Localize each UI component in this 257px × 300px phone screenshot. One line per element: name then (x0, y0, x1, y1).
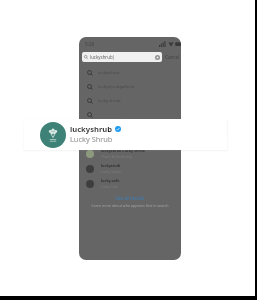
staticText: 5:26 (85, 41, 95, 47)
staticText: luckyshrub| (90, 54, 116, 60)
button[interactable]: See all results (79, 195, 181, 201)
staticText: luckystudi (101, 163, 121, 168)
staticText: luckyshrub (98, 70, 120, 76)
staticText: lucky shrub (98, 98, 121, 104)
button[interactable]: luckyshrub Lucky Shrub (86, 147, 181, 160)
staticText: Plants & Gardening (101, 154, 132, 159)
button[interactable]: luckyshrubgalleria (87, 80, 181, 94)
staticText: Lucky Shrub (70, 134, 113, 144)
button[interactable]: lucky shrub (87, 94, 181, 108)
button[interactable]: Cancel (165, 54, 180, 60)
button[interactable]: lucky.cafe (86, 177, 181, 190)
button[interactable]: luckyshrub (24, 119, 227, 150)
button[interactable]: luckyshrub (87, 66, 181, 80)
staticText: Learn more about who appears first in se… (83, 203, 177, 208)
button[interactable]: luckystudi (86, 162, 181, 175)
button[interactable]: luckyshrub| (82, 52, 162, 62)
staticText: lucky.cafe (101, 178, 120, 183)
staticText: luckyshrubgalleria (98, 84, 135, 90)
staticText: luckyshrub Lucky Shrub (101, 148, 145, 153)
staticText: luckyshrub (70, 124, 113, 134)
staticText: Lucky Studio (101, 169, 122, 174)
staticText: Lucky Cafe (101, 184, 119, 189)
